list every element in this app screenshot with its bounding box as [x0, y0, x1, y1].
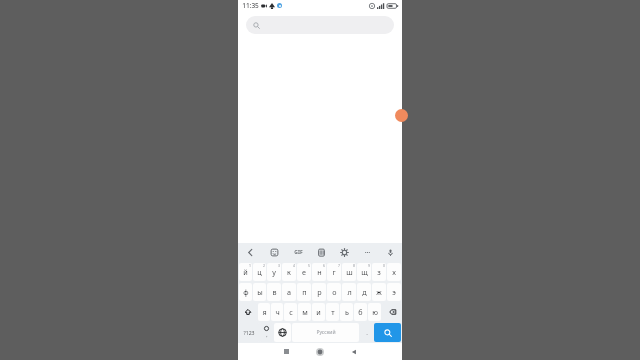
- staticText: 0: [383, 263, 385, 268]
- staticText: 7: [338, 263, 340, 268]
- button[interactable]: ы: [253, 283, 266, 301]
- button[interactable]: и: [312, 303, 325, 321]
- button[interactable]: ф: [239, 283, 252, 301]
- button[interactable]: в: [267, 283, 281, 301]
- button[interactable]: ч: [271, 303, 283, 321]
- staticText: е: [302, 267, 306, 277]
- button[interactable]: т: [326, 303, 339, 321]
- staticText: 2: [263, 263, 265, 268]
- staticText: з: [377, 267, 381, 277]
- button[interactable]: Backspace: [382, 303, 401, 321]
- button[interactable]: Voice input: [381, 243, 400, 262]
- button[interactable]: Русский: [292, 323, 359, 342]
- staticText: м: [302, 307, 308, 317]
- button[interactable]: о: [327, 283, 341, 301]
- staticText: б: [358, 307, 363, 317]
- staticText: э: [392, 287, 396, 297]
- staticText: т: [331, 307, 335, 317]
- button[interactable]: л: [342, 283, 356, 301]
- button[interactable]: с: [284, 303, 297, 321]
- staticText: Русский: [316, 329, 336, 336]
- staticText: я: [262, 307, 267, 317]
- staticText: ,: [266, 332, 268, 339]
- button[interactable]: 4: [282, 263, 296, 281]
- button[interactable]: [246, 16, 394, 34]
- staticText: о: [332, 287, 337, 297]
- button[interactable]: Clipboard: [312, 243, 331, 262]
- staticText: и: [316, 307, 321, 317]
- button[interactable]: п: [297, 283, 311, 301]
- button[interactable]: 7: [327, 263, 341, 281]
- button[interactable]: GIF: [289, 243, 308, 262]
- button[interactable]: 2: [253, 263, 266, 281]
- button[interactable]: 5: [297, 263, 311, 281]
- staticText: .: [366, 329, 368, 337]
- button[interactable]: я: [258, 303, 270, 321]
- staticText: к: [287, 267, 291, 277]
- staticText: х: [392, 267, 396, 277]
- staticText: ф: [243, 287, 249, 297]
- button[interactable]: р: [312, 283, 326, 301]
- staticText: ю: [372, 307, 378, 317]
- staticText: 1: [249, 263, 251, 268]
- staticText: ы: [257, 287, 263, 297]
- button[interactable]: б: [354, 303, 367, 321]
- staticText: р: [317, 287, 322, 297]
- staticText: 5: [308, 263, 310, 268]
- staticText: л: [347, 287, 352, 297]
- staticText: 11:35: [242, 1, 259, 10]
- button[interactable]: х: [387, 263, 401, 281]
- staticText: 8: [353, 263, 355, 268]
- button[interactable]: Change language: [274, 323, 291, 342]
- staticText: н: [317, 267, 322, 277]
- button[interactable]: 8: [342, 263, 356, 281]
- staticText: г: [332, 267, 336, 277]
- staticText: 6: [323, 263, 325, 268]
- staticText: ц: [257, 267, 262, 277]
- staticText: 4: [293, 263, 295, 268]
- button[interactable]: 0: [372, 263, 386, 281]
- staticText: GIF: [294, 249, 303, 256]
- staticText: щ: [361, 267, 368, 277]
- button[interactable]: Emoji and comma: [260, 323, 273, 342]
- button[interactable]: Search: [374, 323, 401, 342]
- button[interactable]: Home: [303, 343, 337, 360]
- button[interactable]: а: [282, 283, 296, 301]
- button[interactable]: ж: [372, 283, 386, 301]
- staticText: 9: [368, 263, 370, 268]
- staticText: с: [289, 307, 293, 317]
- button[interactable]: э: [387, 283, 401, 301]
- staticText: в: [272, 287, 277, 297]
- button[interactable]: Shift: [239, 303, 257, 321]
- staticText: ч: [275, 307, 280, 317]
- button[interactable]: 6: [312, 263, 326, 281]
- button[interactable]: Back: [241, 243, 260, 262]
- staticText: ?123: [243, 329, 255, 336]
- staticText: 3: [278, 263, 280, 268]
- button[interactable]: More options: [358, 243, 377, 262]
- button[interactable]: м: [298, 303, 311, 321]
- staticText: ш: [346, 267, 353, 277]
- staticText: у: [272, 267, 276, 277]
- button[interactable]: Recent apps: [269, 343, 303, 360]
- button[interactable]: 3: [267, 263, 281, 281]
- button[interactable]: Settings: [335, 243, 354, 262]
- staticText: а: [287, 287, 291, 297]
- staticText: ж: [376, 287, 382, 297]
- button[interactable]: ю: [368, 303, 381, 321]
- staticText: й: [243, 267, 248, 277]
- staticText: д: [362, 287, 367, 297]
- button[interactable]: 9: [357, 263, 371, 281]
- staticText: п: [302, 287, 307, 297]
- button[interactable]: 1: [239, 263, 252, 281]
- staticText: ь: [345, 307, 349, 317]
- button[interactable]: ь: [340, 303, 353, 321]
- button[interactable]: д: [357, 283, 371, 301]
- button[interactable]: Sticker: [265, 243, 284, 262]
- button[interactable]: ?123: [239, 323, 259, 342]
- button[interactable]: Back: [337, 343, 371, 360]
